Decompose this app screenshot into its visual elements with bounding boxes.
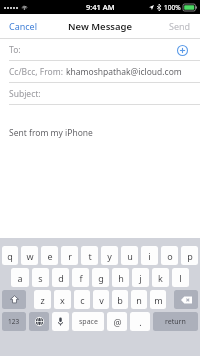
staticText: @ [113,316,122,328]
staticText: d [58,272,64,284]
staticText: q [7,250,13,262]
button[interactable]: e [41,246,58,265]
button[interactable]: j [132,268,149,287]
staticText: m [154,294,163,306]
button[interactable]: k [152,268,169,287]
staticText: f [79,272,83,284]
staticText: 100% [164,3,181,12]
button[interactable]: c [74,290,90,309]
button[interactable]: Cc/Bcc, From: [0,61,200,82]
button[interactable]: h [112,268,129,287]
staticText: n [136,294,142,306]
staticText: g [98,272,104,284]
staticText: a [17,272,23,284]
button[interactable]: i [141,246,158,265]
button[interactable]: q [2,246,18,265]
staticText: e [47,250,53,262]
button[interactable]: . [130,312,150,331]
button[interactable]: x [54,290,71,309]
staticText: c [80,294,85,306]
staticText: z [40,294,45,306]
staticText: s [38,272,43,284]
staticText: . [139,316,142,328]
staticText: t [88,250,92,262]
staticText: u [127,250,133,262]
button[interactable]: w [21,246,38,265]
button[interactable]: return [153,312,198,331]
staticText: Subject: [9,88,41,100]
button[interactable]: Dictation [52,312,69,331]
button[interactable]: Cancel [0,16,47,36]
staticText: k [158,272,163,284]
staticText: y [107,250,112,262]
staticText: khamoshpathak@icloud.com [66,66,182,78]
button[interactable]: Send [160,16,200,36]
staticText: b [117,294,123,306]
staticText: Send [169,20,191,32]
button[interactable]: Add contact [173,41,191,59]
button[interactable]: To: [0,39,200,60]
staticText: To: [9,44,21,56]
staticText: space [79,317,98,327]
button[interactable]: l [172,268,189,287]
staticText: v [99,294,104,306]
staticText: Sent from my iPhone [9,127,93,139]
button[interactable]: y [101,246,118,265]
button[interactable]: o [161,246,178,265]
button[interactable]: u [121,246,138,265]
button[interactable]: 123 [2,312,26,331]
staticText: o [167,250,173,262]
staticText: 9:41 AM [86,2,115,12]
button[interactable]: a [11,268,29,287]
staticText: x [60,294,65,306]
staticText: New Message [68,20,133,33]
button[interactable]: s [32,268,49,287]
staticText: Cancel [9,20,38,32]
staticText: p [187,250,193,262]
button[interactable]: b [112,290,128,309]
button[interactable]: d [52,268,69,287]
button[interactable]: m [150,290,166,309]
staticText: w [26,250,34,262]
button[interactable]: v [93,290,109,309]
staticText: Cc/Bcc, From: [9,66,66,78]
staticText: r [68,250,72,262]
button[interactable]: r [61,246,78,265]
button[interactable]: Emoji [29,312,49,331]
staticText: return [165,317,186,327]
staticText: i [148,250,151,262]
button[interactable]: t [81,246,98,265]
button[interactable]: space [72,312,104,331]
button[interactable]: z [34,290,51,309]
button[interactable]: n [131,290,147,309]
button[interactable]: p [181,246,198,265]
button[interactable]: Backspace [174,290,198,309]
button[interactable]: Subject: [0,83,200,104]
button[interactable]: f [72,268,89,287]
staticText: j [139,272,142,284]
staticText: l [179,272,182,284]
button[interactable]: g [92,268,109,287]
button[interactable]: @ [107,312,127,331]
staticText: 123 [8,317,20,326]
staticText: h [118,272,124,284]
button[interactable]: Shift [2,290,26,309]
